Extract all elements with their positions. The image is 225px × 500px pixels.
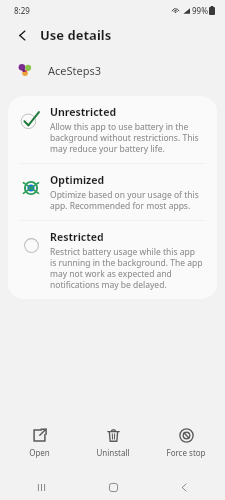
- button[interactable]: AceSteps3: [0, 50, 225, 90]
- button[interactable]: Home: [83, 474, 143, 500]
- staticText: Restrict battery usage while this app is…: [50, 246, 203, 290]
- staticText: Open: [29, 447, 50, 458]
- button[interactable]: Force stop: [151, 425, 221, 461]
- staticText: 8:29: [14, 5, 30, 16]
- staticText: Optimize based on your usage of this app…: [50, 189, 203, 211]
- button[interactable]: Back: [10, 23, 34, 47]
- button[interactable]: Recent apps: [11, 474, 71, 500]
- staticText: Allow this app to use battery in the bac…: [50, 121, 203, 154]
- button[interactable]: Open: [4, 425, 74, 461]
- staticText: Unrestricted: [50, 105, 117, 119]
- staticText: Optimized: [50, 173, 105, 187]
- button[interactable]: Optimized: [8, 164, 217, 220]
- staticText: Force stop: [166, 447, 206, 458]
- button[interactable]: Restricted: [8, 221, 217, 299]
- button[interactable]: Back: [154, 474, 214, 500]
- button[interactable]: Uninstall: [78, 425, 148, 461]
- staticText: Use details: [40, 26, 112, 44]
- staticText: Restricted: [50, 230, 104, 244]
- staticText: Uninstall: [96, 447, 130, 458]
- staticText: AceSteps3: [48, 63, 102, 78]
- button[interactable]: Unrestricted: [8, 96, 217, 163]
- staticText: 99%: [192, 5, 208, 16]
